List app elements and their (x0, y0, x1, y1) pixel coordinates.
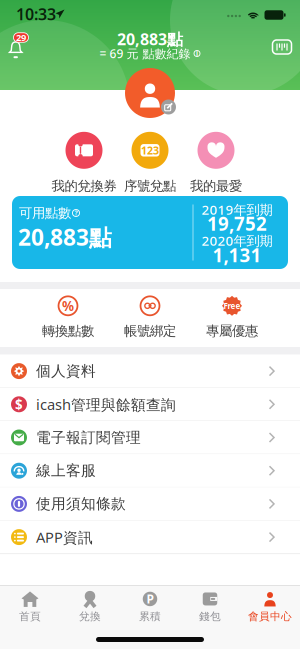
staticText: 專屬優惠 (206, 323, 258, 339)
staticText: 2020年到期 (201, 232, 272, 249)
button[interactable]: Available points (12, 196, 288, 269)
staticText: 兌換 (79, 610, 101, 623)
staticText: 10:33 (16, 3, 56, 25)
button[interactable]: Member barcode (269, 37, 295, 57)
button[interactable]: APP資訊 (0, 520, 300, 554)
button[interactable]: Redeem (61, 586, 119, 628)
button[interactable]: 序號兌點 (115, 131, 185, 195)
staticText: 會員中心 (248, 610, 292, 623)
staticText: 20,883點 (117, 28, 183, 50)
button[interactable]: Notifications (4, 33, 34, 61)
staticText: 可用點數 (19, 205, 71, 221)
staticText: 我的最愛 (190, 178, 242, 194)
staticText: 29 (16, 31, 26, 44)
button[interactable]: Member (241, 586, 299, 628)
staticText: 線上客服 (36, 462, 96, 480)
button[interactable]: 使用須知條款 (0, 487, 300, 520)
staticText: ? (74, 209, 77, 217)
staticText: 2019年到期 (201, 201, 272, 218)
staticText: 序號兌點 (124, 178, 176, 194)
button[interactable]: 個人資料 (0, 354, 300, 388)
staticText: % (62, 297, 74, 315)
staticText: $ (15, 395, 23, 413)
button[interactable]: 電子報訂閱管理 (0, 421, 300, 454)
staticText: 使用須知條款 (36, 495, 126, 513)
staticText: i (196, 49, 198, 58)
button[interactable]: Earn (121, 586, 179, 628)
button[interactable]: 專屬優惠 (195, 292, 269, 342)
button[interactable]: Edit profile (122, 65, 178, 121)
staticText: 轉換點數 (42, 323, 94, 339)
staticText: 帳號綁定 (124, 323, 176, 339)
button[interactable]: 帳號綁定 (113, 292, 187, 342)
staticText: 我的兌換券 (51, 178, 116, 194)
button[interactable]: 我的最愛 (181, 131, 251, 195)
staticText: 電子報訂閱管理 (36, 428, 141, 446)
button[interactable]: Points history (99, 45, 200, 61)
staticText: 個人資料 (36, 362, 96, 380)
staticText: 首頁 (19, 610, 41, 623)
staticText: P (146, 591, 153, 607)
staticText: 123 (141, 143, 159, 157)
staticText: Free (223, 300, 240, 311)
staticText: 累積 (139, 610, 161, 623)
staticText: = 69 元 點數紀錄 (99, 45, 190, 61)
staticText: 19,752 (207, 211, 267, 236)
button[interactable]: Home (1, 586, 59, 628)
staticText: 1,131 (212, 243, 261, 267)
button[interactable]: 我的兌換券 (49, 131, 119, 195)
button[interactable]: Wallet (181, 586, 239, 628)
button[interactable]: icash管理與餘額查詢 (0, 388, 300, 421)
staticText: APP資訊 (36, 527, 93, 547)
staticText: 錢包 (199, 610, 221, 623)
staticText: 20,883點 (18, 222, 112, 252)
button[interactable]: 轉換點數 (31, 292, 105, 342)
staticText: icash管理與餘額查詢 (36, 394, 176, 414)
button[interactable]: 線上客服 (0, 454, 300, 487)
